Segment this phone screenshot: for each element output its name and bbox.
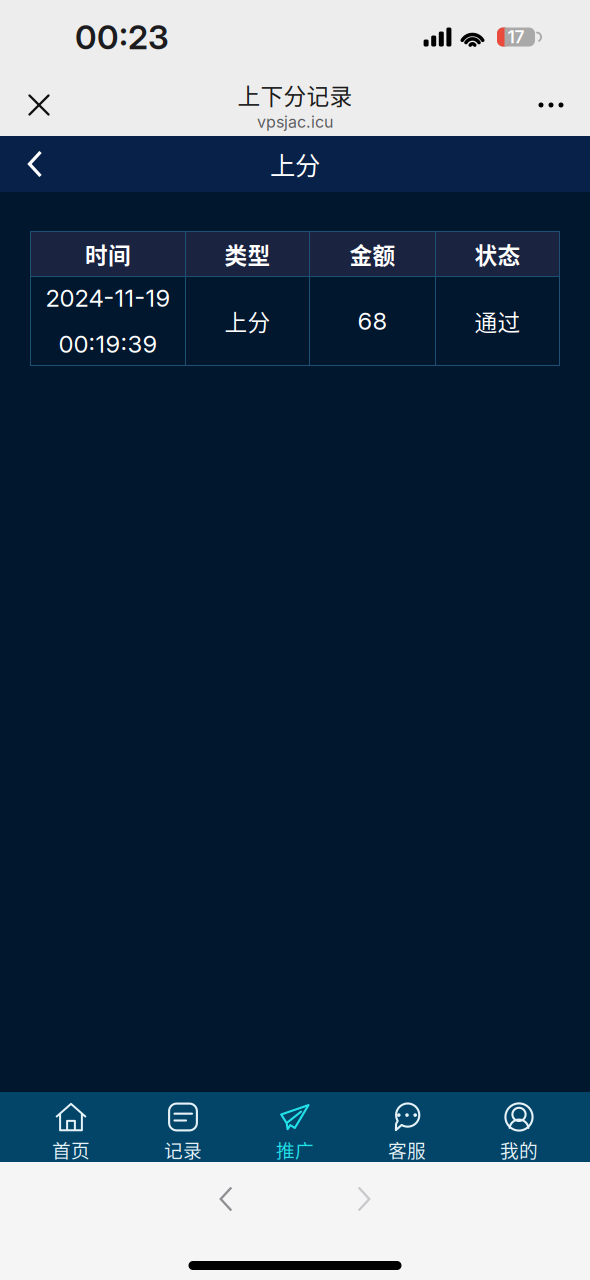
staticText: 上下分记录 bbox=[237, 78, 352, 111]
staticText: 推广 bbox=[276, 1136, 314, 1163]
staticText: 客服 bbox=[388, 1136, 426, 1163]
button[interactable]: Back bbox=[7, 136, 63, 192]
staticText: 17 bbox=[507, 26, 524, 47]
button[interactable]: Forward bbox=[335, 1176, 393, 1222]
button[interactable]: 记录 bbox=[127, 1087, 239, 1167]
staticText: 00:23 bbox=[75, 17, 169, 57]
staticText: 上分 bbox=[224, 305, 270, 337]
button[interactable]: 客服 bbox=[351, 1087, 463, 1167]
staticText: 上分 bbox=[270, 146, 320, 182]
staticText: 金额 bbox=[349, 238, 395, 270]
staticText: 我的 bbox=[500, 1136, 538, 1163]
staticText: 状态 bbox=[474, 238, 520, 270]
staticText: vpsjac.icu bbox=[257, 112, 333, 132]
button[interactable]: 推广 bbox=[239, 1087, 351, 1167]
staticText: 00:19:39 bbox=[58, 329, 157, 358]
staticText: 68 bbox=[357, 306, 387, 335]
button[interactable]: 首页 bbox=[15, 1087, 127, 1167]
staticText: 记录 bbox=[164, 1136, 202, 1163]
staticText: 类型 bbox=[224, 238, 270, 270]
staticText: 首页 bbox=[52, 1136, 90, 1163]
button[interactable]: More bbox=[528, 82, 574, 128]
staticText: 时间 bbox=[85, 238, 131, 270]
staticText: 2024-11-19 bbox=[45, 283, 170, 312]
button[interactable]: Close bbox=[16, 82, 62, 128]
staticText: 通过 bbox=[474, 305, 520, 337]
button[interactable]: 我的 bbox=[463, 1087, 575, 1167]
button[interactable]: Back bbox=[197, 1176, 255, 1222]
